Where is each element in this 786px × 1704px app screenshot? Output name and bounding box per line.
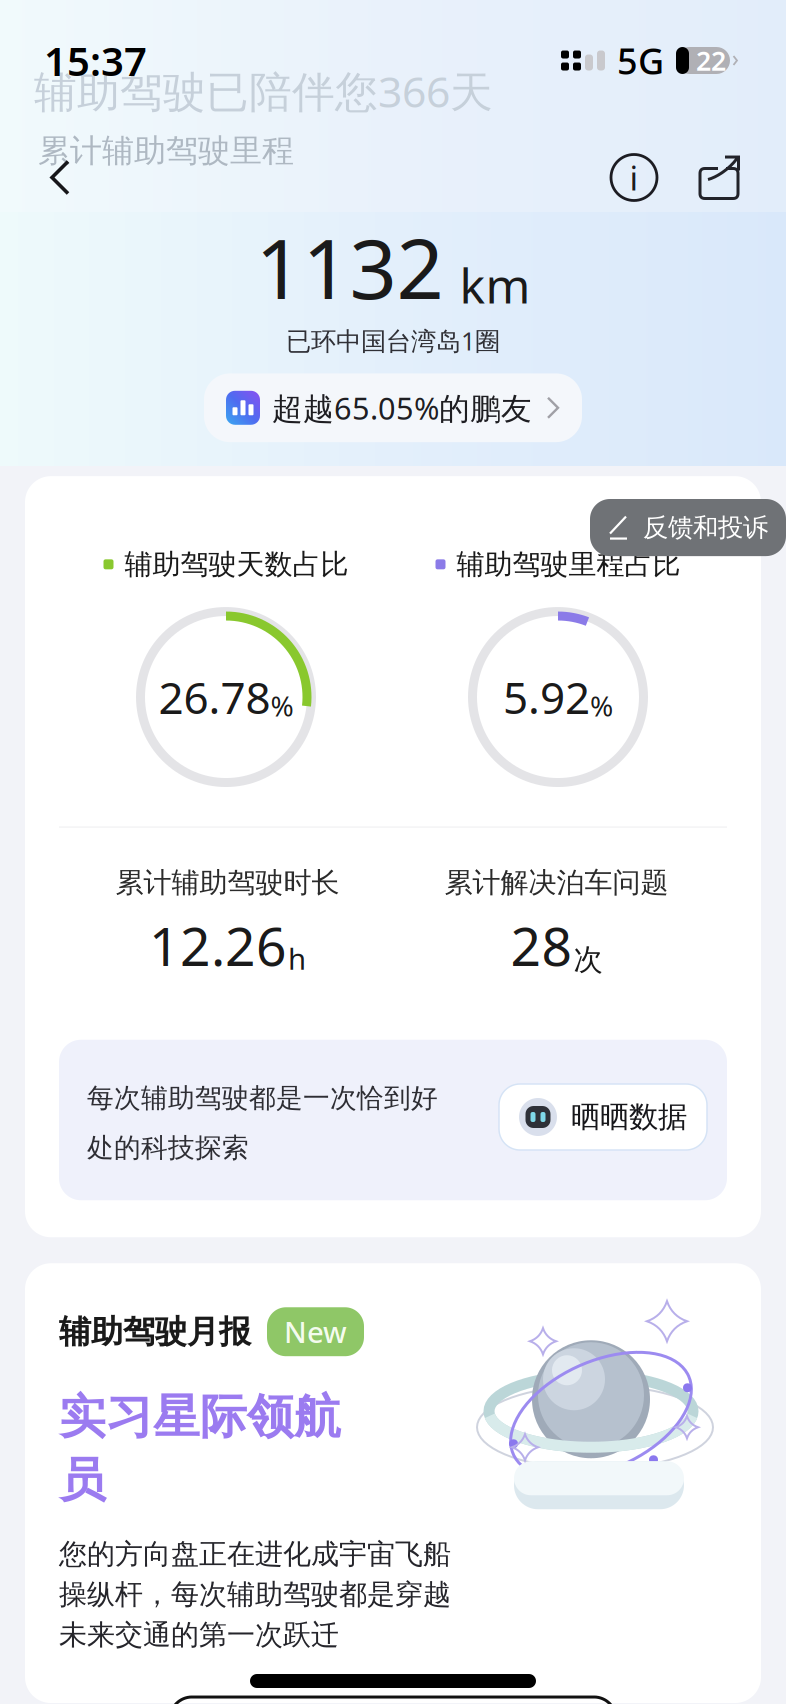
staticText: 辅助驾驶天数占比 [124,547,348,581]
staticText: i [629,155,638,200]
staticText: 12.26 [149,910,287,981]
staticText: 辅助驾驶月报 [59,1312,251,1351]
button[interactable]: Information [602,145,666,209]
staticText: 超越65.05%的鹏友 [272,387,532,428]
staticText: 1132 [255,212,443,322]
staticText: 辅助驾驶已陪伴您366天 [34,62,493,119]
staticText: 已环中国台湾岛1圈 [286,324,500,357]
staticText: km [459,253,530,317]
button[interactable]: 超越65.05%的鹏友 [204,373,582,442]
button[interactable]: Share [688,145,750,209]
staticText: 5G [617,37,664,84]
staticText: 未来交通的第一次跃迁 [59,1618,339,1652]
staticText: 处的科技探索 [87,1131,249,1164]
staticText: 累计辅助驾驶时长 [115,865,339,900]
staticText: 15:37 [44,34,147,87]
staticText: 辅助驾驶里程占比 [456,547,680,581]
button[interactable]: Back [30,150,90,204]
staticText: New [284,1312,347,1351]
staticText: 操纵杆，每次辅助驾驶都是穿越 [59,1577,451,1612]
staticText: 28 [510,910,572,981]
staticText: 26.78 [158,668,270,726]
staticText: 员 [59,1451,106,1509]
button[interactable]: 晒晒数据 [499,1084,707,1150]
staticText: 22 [696,43,726,78]
staticText: 累计辅助驾驶里程 [38,131,294,170]
staticText: % [590,687,613,724]
staticText: 晒晒数据 [571,1099,687,1135]
staticText: h [288,939,306,978]
staticText: 实习星际领航 [59,1388,341,1445]
button[interactable]: 反馈和投诉 [590,499,786,556]
staticText: 累计解决泊车问题 [444,865,668,900]
staticText: 5.92 [503,668,590,726]
staticText: 反馈和投诉 [643,512,768,543]
staticText: % [270,687,293,724]
staticText: 您的方向盘正在进化成宇宙飞船 [59,1537,451,1571]
staticText: 每次辅助驾驶都是一次恰到好 [87,1082,438,1115]
staticText: 次 [573,942,602,978]
